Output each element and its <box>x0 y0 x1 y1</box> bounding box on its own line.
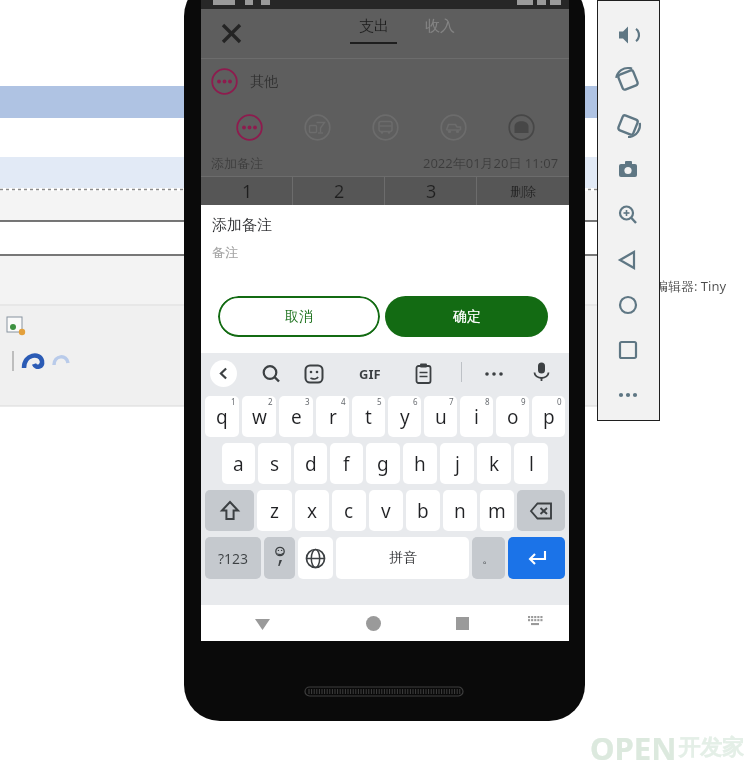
button[interactable]: o <box>496 396 529 437</box>
button[interactable]: Category 5 <box>499 105 543 149</box>
staticText: s <box>270 451 280 477</box>
button[interactable]: Overview <box>423 605 502 641</box>
button[interactable]: Hide keyboard <box>201 605 323 641</box>
staticText: 编辑器: Tiny <box>655 277 727 295</box>
staticText: m <box>488 498 506 524</box>
button[interactable]: Home <box>323 605 423 641</box>
staticText: o <box>507 404 519 430</box>
staticText: OPEN <box>590 727 677 764</box>
button[interactable]: Stickers <box>304 364 325 385</box>
button[interactable]: Rotate left <box>611 63 645 97</box>
button[interactable]: h <box>403 443 437 484</box>
staticText: 其他 <box>250 73 278 91</box>
button[interactable]: k <box>477 443 511 484</box>
button[interactable]: 收入 <box>419 17 461 36</box>
button[interactable]: Rotate right <box>611 108 645 142</box>
staticText: q <box>216 404 228 430</box>
button[interactable]: Back <box>210 360 237 387</box>
staticText: 2 <box>334 179 345 204</box>
button[interactable]: y <box>388 396 421 437</box>
staticText: h <box>414 451 426 477</box>
button[interactable]: l <box>514 443 548 484</box>
staticText: 备注 <box>212 244 238 260</box>
button[interactable]: d <box>294 443 327 484</box>
button[interactable]: n <box>443 490 477 531</box>
staticText: GIF <box>359 365 381 383</box>
button[interactable]: v <box>369 490 403 531</box>
button[interactable]: More <box>611 378 645 412</box>
button[interactable]: c <box>332 490 366 531</box>
button[interactable]: 取消 <box>218 296 380 337</box>
button[interactable]: 删除 <box>477 177 569 205</box>
button[interactable]: Overview <box>611 333 645 367</box>
button[interactable]: f <box>330 443 363 484</box>
button[interactable]: Category 3 <box>363 105 407 149</box>
button[interactable]: u <box>424 396 457 437</box>
button[interactable]: 拼音 <box>336 537 469 579</box>
button[interactable]: Category 4 <box>431 105 475 149</box>
staticText: z <box>270 498 279 524</box>
staticText: a <box>233 451 244 477</box>
button[interactable]: x <box>295 490 329 531</box>
button[interactable]: Search <box>261 364 282 385</box>
button[interactable]: Back <box>611 243 645 277</box>
button[interactable]: j <box>440 443 474 484</box>
button[interactable]: ?123 <box>205 537 261 579</box>
staticText: l <box>529 451 534 477</box>
staticText: p <box>543 404 555 430</box>
button[interactable]: 1 <box>201 177 293 205</box>
button[interactable]: Close <box>207 9 255 57</box>
button[interactable]: t <box>352 396 385 437</box>
button[interactable]: z <box>257 490 292 531</box>
button[interactable]: Clipboard <box>413 363 434 384</box>
staticText: 6 <box>413 396 418 407</box>
staticText: 添加备注 <box>212 216 272 235</box>
button[interactable]: Switch keyboard <box>502 605 569 641</box>
button[interactable]: g <box>366 443 400 484</box>
button[interactable]: s <box>258 443 291 484</box>
button[interactable]: Emoji and comma <box>264 537 295 579</box>
button[interactable]: r <box>316 396 349 437</box>
button[interactable]: 添加备注 <box>211 155 263 171</box>
button[interactable]: p <box>532 396 565 437</box>
button[interactable]: m <box>480 490 514 531</box>
button[interactable]: More options <box>484 364 505 385</box>
button[interactable]: 支出 <box>344 17 403 44</box>
button[interactable]: Category 1 <box>227 105 271 149</box>
button[interactable]: 2022年01月20日 11:07 <box>423 154 559 172</box>
staticText: g <box>377 451 389 477</box>
staticText: 开发家园 <box>678 734 744 762</box>
button[interactable]: a <box>222 443 255 484</box>
button[interactable]: Enter <box>508 537 565 579</box>
button[interactable]: Screenshot <box>611 153 645 187</box>
button[interactable]: Zoom <box>611 198 645 232</box>
button[interactable]: Backspace <box>517 490 565 531</box>
staticText: w <box>252 404 267 430</box>
staticText: r <box>329 404 337 430</box>
staticText: e <box>291 404 302 430</box>
staticText: 0 <box>557 396 562 407</box>
button[interactable]: e <box>279 396 313 437</box>
button[interactable]: 其他 <box>201 59 569 104</box>
button[interactable]: w <box>242 396 276 437</box>
staticText: d <box>305 451 317 477</box>
staticText: 收入 <box>425 17 455 36</box>
staticText: 1 <box>242 179 253 204</box>
button[interactable]: Voice input <box>531 362 552 383</box>
staticText: f <box>343 451 350 477</box>
button[interactable]: 2 <box>293 177 385 205</box>
button[interactable]: Category 2 <box>295 105 339 149</box>
button[interactable]: b <box>406 490 440 531</box>
button[interactable]: Shift <box>205 490 254 531</box>
button[interactable]: Change language <box>298 537 333 579</box>
button[interactable]: 3 <box>385 177 477 205</box>
staticText: v <box>381 498 391 524</box>
button[interactable]: Volume <box>611 18 645 52</box>
staticText: 删除 <box>510 183 536 199</box>
button[interactable]: 确定 <box>385 296 548 337</box>
button[interactable]: Home <box>611 288 645 322</box>
staticText: n <box>454 498 466 524</box>
button[interactable]: q <box>205 396 239 437</box>
button[interactable]: i <box>460 396 493 437</box>
button[interactable]: 。 <box>472 537 505 579</box>
